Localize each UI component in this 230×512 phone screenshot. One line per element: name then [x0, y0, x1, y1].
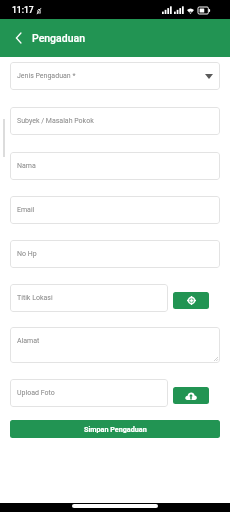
button[interactable]: Nama [10, 152, 220, 180]
staticText: Upload Foto [17, 389, 55, 397]
button[interactable]: No Hp [10, 240, 220, 268]
button[interactable]: Get current location [173, 292, 209, 309]
button[interactable]: Upload Foto [10, 379, 168, 407]
staticText: Alamat [17, 337, 40, 345]
staticText: Subyek / Masalah Pokok [17, 117, 94, 125]
staticText: Pengaduan [32, 32, 86, 44]
button[interactable]: Email [10, 196, 220, 224]
staticText: No Hp [17, 250, 37, 258]
staticText: 11:17 [12, 5, 34, 15]
button[interactable]: Simpan Pengaduan [10, 420, 220, 438]
button[interactable]: Upload photo [173, 387, 209, 404]
staticText: Jenis Pengaduan * [17, 72, 76, 80]
staticText: Titik Lokasi [17, 294, 53, 302]
staticText: Email [17, 206, 35, 214]
button[interactable]: Jenis Pengaduan * [10, 62, 220, 90]
staticText: Nama [17, 162, 36, 170]
button[interactable]: Subyek / Masalah Pokok [10, 107, 220, 135]
staticText: Simpan Pengaduan [84, 425, 147, 433]
button[interactable]: Titik Lokasi [10, 284, 168, 312]
button[interactable]: Back [7, 27, 29, 49]
button[interactable]: Alamat [10, 327, 220, 363]
